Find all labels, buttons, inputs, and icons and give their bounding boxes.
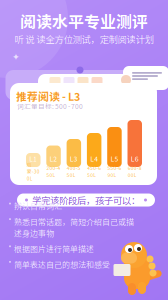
- staticText: 启蒙-300L: [27, 161, 40, 182]
- staticText: 辨认日常词汇: [14, 200, 62, 212]
- staticText: 听 说 读全方位测试，定制阅读计划: [14, 32, 153, 46]
- staticText: 词汇量目标: 500 - 700: [17, 101, 83, 111]
- staticText: L6: [131, 154, 139, 163]
- staticText: 400-550L: [67, 164, 81, 178]
- staticText: 学完该阶段后，孩子可以：: [32, 193, 140, 207]
- staticText: 熟悉日常话题，简短介绍自己或描述身边事物: [14, 216, 134, 239]
- staticText: L4: [90, 154, 98, 163]
- staticText: L2: [49, 154, 57, 163]
- staticText: 200-450L: [46, 164, 60, 178]
- staticText: 600-800L: [128, 164, 142, 178]
- staticText: ✦: [12, 52, 20, 62]
- staticText: L3: [70, 154, 78, 163]
- staticText: 550-690L: [107, 164, 121, 178]
- staticText: 根据图片进行简单描述: [14, 243, 94, 254]
- staticText: 450-650L: [87, 164, 101, 178]
- staticText: 阅读水平专业测评: [20, 9, 148, 33]
- staticText: 推荐阅读 - L3: [16, 88, 80, 104]
- staticText: L5: [110, 154, 118, 163]
- staticText: L1: [29, 154, 37, 163]
- staticText: 简单表达自己的想法和感受: [14, 258, 110, 270]
